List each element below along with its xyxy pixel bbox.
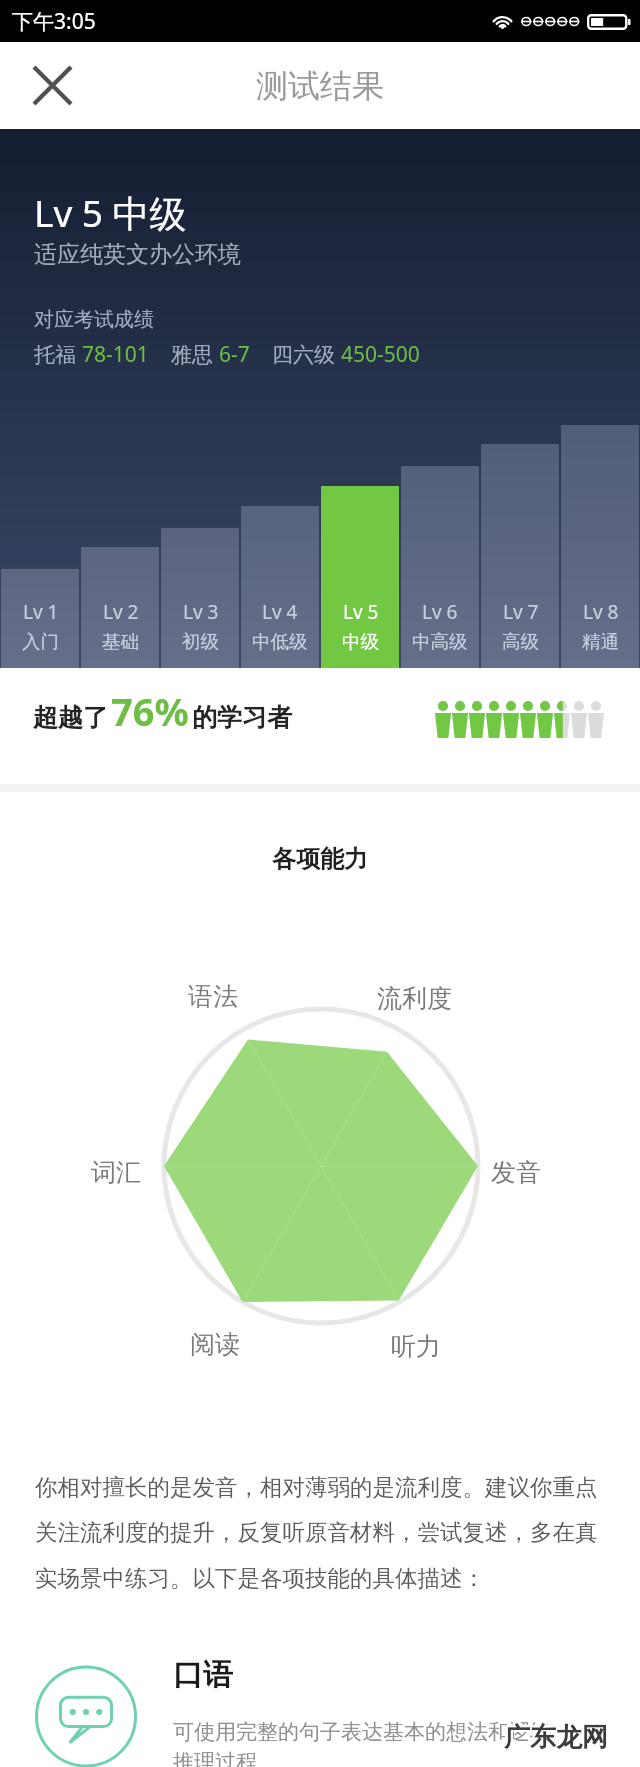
staticText: 超越了 xyxy=(33,702,108,733)
staticText: 广东龙网 xyxy=(504,1719,608,1752)
staticText: 各项能力 xyxy=(0,844,640,874)
staticText: Lv 7 xyxy=(503,599,539,625)
staticText: 广东龙网 xyxy=(502,1722,606,1755)
staticText: 听力 xyxy=(391,1331,441,1362)
staticText: 语法 xyxy=(188,981,238,1012)
staticText: 广东龙网 xyxy=(502,1721,606,1754)
staticText: 基础 xyxy=(102,630,139,653)
staticText: Lv 5 中级 xyxy=(34,187,187,238)
staticText: 450-500 xyxy=(341,340,420,369)
staticText: 入门 xyxy=(22,630,59,653)
staticText: 你相对擅长的是发音，相对薄弱的是流利度。建议你重点关注流利度的提升，反复听原音材… xyxy=(35,1473,605,1593)
staticText: 对应考试成绩 xyxy=(34,307,154,332)
staticText: 广东龙网 xyxy=(502,1723,606,1756)
staticText: 广东龙网 xyxy=(505,1720,609,1753)
staticText: 广东龙网 xyxy=(504,1723,608,1756)
staticText: 中级 xyxy=(342,630,379,653)
staticText: 广东龙网 xyxy=(503,1721,607,1754)
staticText: 四六级 xyxy=(272,340,341,369)
staticText: 广东龙网 xyxy=(502,1719,606,1752)
staticText: 广东龙网 xyxy=(506,1723,610,1756)
staticText: 测试结果 xyxy=(256,66,384,106)
staticText: 广东龙网 xyxy=(503,1720,607,1753)
staticText: 广东龙网 xyxy=(505,1719,609,1752)
staticText: 广东龙网 xyxy=(505,1723,609,1756)
staticText: 广东龙网 xyxy=(504,1721,608,1754)
staticText: 下午3:05 xyxy=(12,7,96,36)
staticText: 广东龙网 xyxy=(504,1720,608,1753)
staticText: 广东龙网 xyxy=(505,1721,609,1754)
staticText: 广东龙网 xyxy=(502,1720,606,1753)
staticText: Lv 3 xyxy=(183,599,219,625)
staticText: 流利度 xyxy=(377,983,452,1014)
staticText: 广东龙网 xyxy=(506,1720,610,1753)
staticText: 精通 xyxy=(582,630,619,653)
staticText: 可使用完整的句子表达基本的想法和逻辑推理过程。 xyxy=(173,1719,567,1767)
staticText: 中低级 xyxy=(252,630,308,653)
staticText: Lv 5 xyxy=(343,599,379,625)
staticText: 广东龙网 xyxy=(506,1722,610,1755)
button[interactable]: Close xyxy=(0,42,105,129)
staticText: 高级 xyxy=(502,630,539,653)
staticText: 76% xyxy=(111,685,189,737)
staticText: 口语 xyxy=(173,1656,233,1694)
staticText: 托福 xyxy=(34,340,82,369)
staticText: 的学习者 xyxy=(192,702,292,733)
staticText: 发音 xyxy=(491,1157,541,1188)
staticText: 词汇 xyxy=(91,1157,141,1188)
staticText: 78-101 xyxy=(82,340,149,369)
staticText: 初级 xyxy=(182,630,219,653)
staticText: 广东龙网 xyxy=(506,1719,610,1752)
staticText: Lv 8 xyxy=(583,599,619,625)
staticText: Lv 1 xyxy=(23,599,59,625)
staticText: 广东龙网 xyxy=(503,1723,607,1756)
staticText: 中高级 xyxy=(412,630,468,653)
staticText: 广东龙网 xyxy=(503,1719,607,1752)
staticText: Lv 4 xyxy=(262,599,298,625)
staticText: 适应纯英文办公环境 xyxy=(34,240,241,269)
staticText: 广东龙网 xyxy=(505,1722,609,1755)
staticText: 雅思 xyxy=(171,340,219,369)
staticText: 广东龙网 xyxy=(504,1722,608,1755)
staticText: 6-7 xyxy=(219,340,250,369)
staticText: 广东龙网 xyxy=(506,1721,610,1754)
staticText: 阅读 xyxy=(190,1329,240,1360)
staticText: 广东龙网 xyxy=(503,1722,607,1755)
staticText: Lv 2 xyxy=(103,599,139,625)
staticText: Lv 6 xyxy=(422,599,458,625)
